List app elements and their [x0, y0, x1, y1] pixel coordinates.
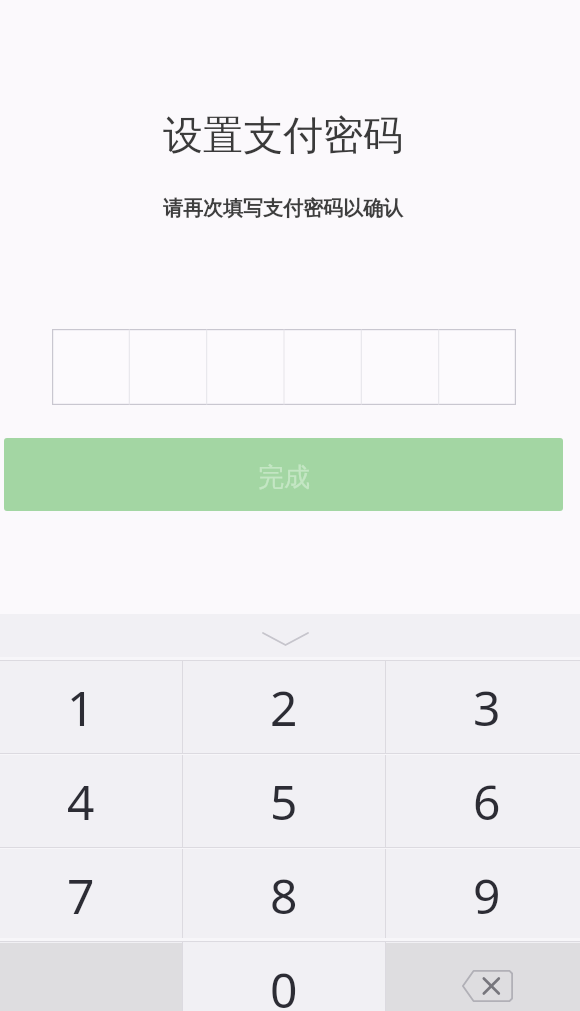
- button[interactable]: 9: [386, 849, 580, 943]
- staticText: 8: [270, 863, 298, 928]
- button[interactable]: 0: [183, 943, 385, 1011]
- button[interactable]: 6: [386, 755, 580, 849]
- staticText: 9: [473, 863, 501, 928]
- button[interactable]: 1: [0, 661, 182, 755]
- button[interactable]: 5: [183, 755, 385, 849]
- staticText: 5: [270, 769, 298, 834]
- button[interactable]: Payment password field: [52, 329, 516, 405]
- staticText: 4: [67, 769, 95, 834]
- staticText: 设置支付密码: [0, 110, 573, 160]
- button[interactable]: 2: [183, 661, 385, 755]
- button[interactable]: 8: [183, 849, 385, 943]
- button[interactable]: 7: [0, 849, 182, 943]
- staticText: 请再次填写支付密码以确认: [0, 196, 573, 221]
- staticText: 完成: [258, 461, 310, 494]
- button[interactable]: 完成: [4, 438, 563, 511]
- staticText: 3: [473, 675, 501, 740]
- staticText: 6: [473, 769, 501, 834]
- staticText: 0: [270, 957, 298, 1011]
- staticText: 7: [67, 863, 95, 928]
- staticText: 1: [67, 675, 95, 740]
- button[interactable]: 4: [0, 755, 182, 849]
- button[interactable]: Backspace: [386, 943, 580, 1011]
- button[interactable]: 3: [386, 661, 580, 755]
- button[interactable]: Hide keyboard: [0, 614, 580, 661]
- staticText: 2: [270, 675, 298, 740]
